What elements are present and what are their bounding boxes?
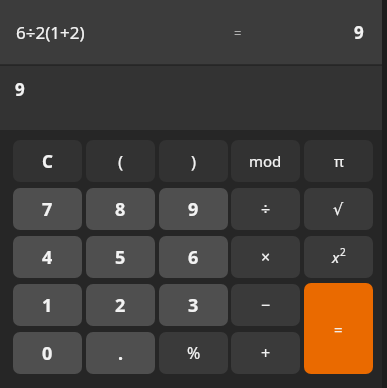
staticText: %: [187, 342, 201, 364]
button[interactable]: −: [231, 284, 300, 326]
button[interactable]: Equals: [304, 283, 373, 374]
staticText: 0: [42, 341, 53, 366]
staticText: mod: [249, 151, 282, 171]
staticText: ): [191, 150, 197, 173]
button[interactable]: 7: [13, 188, 82, 230]
button[interactable]: ×: [231, 236, 300, 278]
button[interactable]: C: [13, 140, 82, 182]
staticText: π: [334, 151, 344, 171]
button[interactable]: 1: [13, 284, 82, 326]
button[interactable]: (: [86, 140, 155, 182]
staticText: 7: [42, 197, 53, 222]
staticText: 9: [188, 197, 199, 222]
button[interactable]: 8: [86, 188, 155, 230]
button[interactable]: %: [159, 332, 228, 374]
button[interactable]: x squared: [304, 236, 373, 278]
button[interactable]: ÷: [231, 188, 300, 230]
staticText: (: [118, 150, 124, 173]
staticText: 6: [188, 245, 199, 270]
button[interactable]: 4: [13, 236, 82, 278]
staticText: −: [261, 294, 271, 316]
button[interactable]: .: [86, 332, 155, 374]
staticText: 2: [115, 293, 126, 318]
button[interactable]: √: [304, 188, 373, 230]
staticText: 3: [188, 293, 199, 318]
button[interactable]: 9: [159, 188, 228, 230]
staticText: C: [42, 150, 53, 173]
button[interactable]: 6: [159, 236, 228, 278]
staticText: =: [234, 24, 242, 42]
staticText: ×: [261, 246, 271, 268]
staticText: √: [333, 200, 344, 219]
staticText: 9: [354, 21, 364, 44]
button[interactable]: +: [231, 332, 300, 374]
staticText: .: [118, 341, 124, 366]
button[interactable]: ): [159, 140, 228, 182]
staticText: 1: [42, 293, 53, 318]
staticText: =: [334, 319, 343, 339]
staticText: 2: [340, 245, 346, 259]
button[interactable]: 0: [13, 332, 82, 374]
button[interactable]: 2: [86, 284, 155, 326]
button[interactable]: 3: [159, 284, 228, 326]
staticText: x: [332, 247, 340, 267]
staticText: 6÷2(1+2): [16, 21, 85, 44]
staticText: 5: [115, 245, 126, 270]
staticText: 8: [115, 197, 126, 222]
staticText: ÷: [261, 198, 271, 220]
button[interactable]: mod: [231, 140, 300, 182]
staticText: 9: [15, 78, 25, 101]
button[interactable]: 5: [86, 236, 155, 278]
button[interactable]: π: [304, 140, 373, 182]
staticText: 4: [42, 245, 53, 270]
staticText: +: [261, 342, 271, 364]
